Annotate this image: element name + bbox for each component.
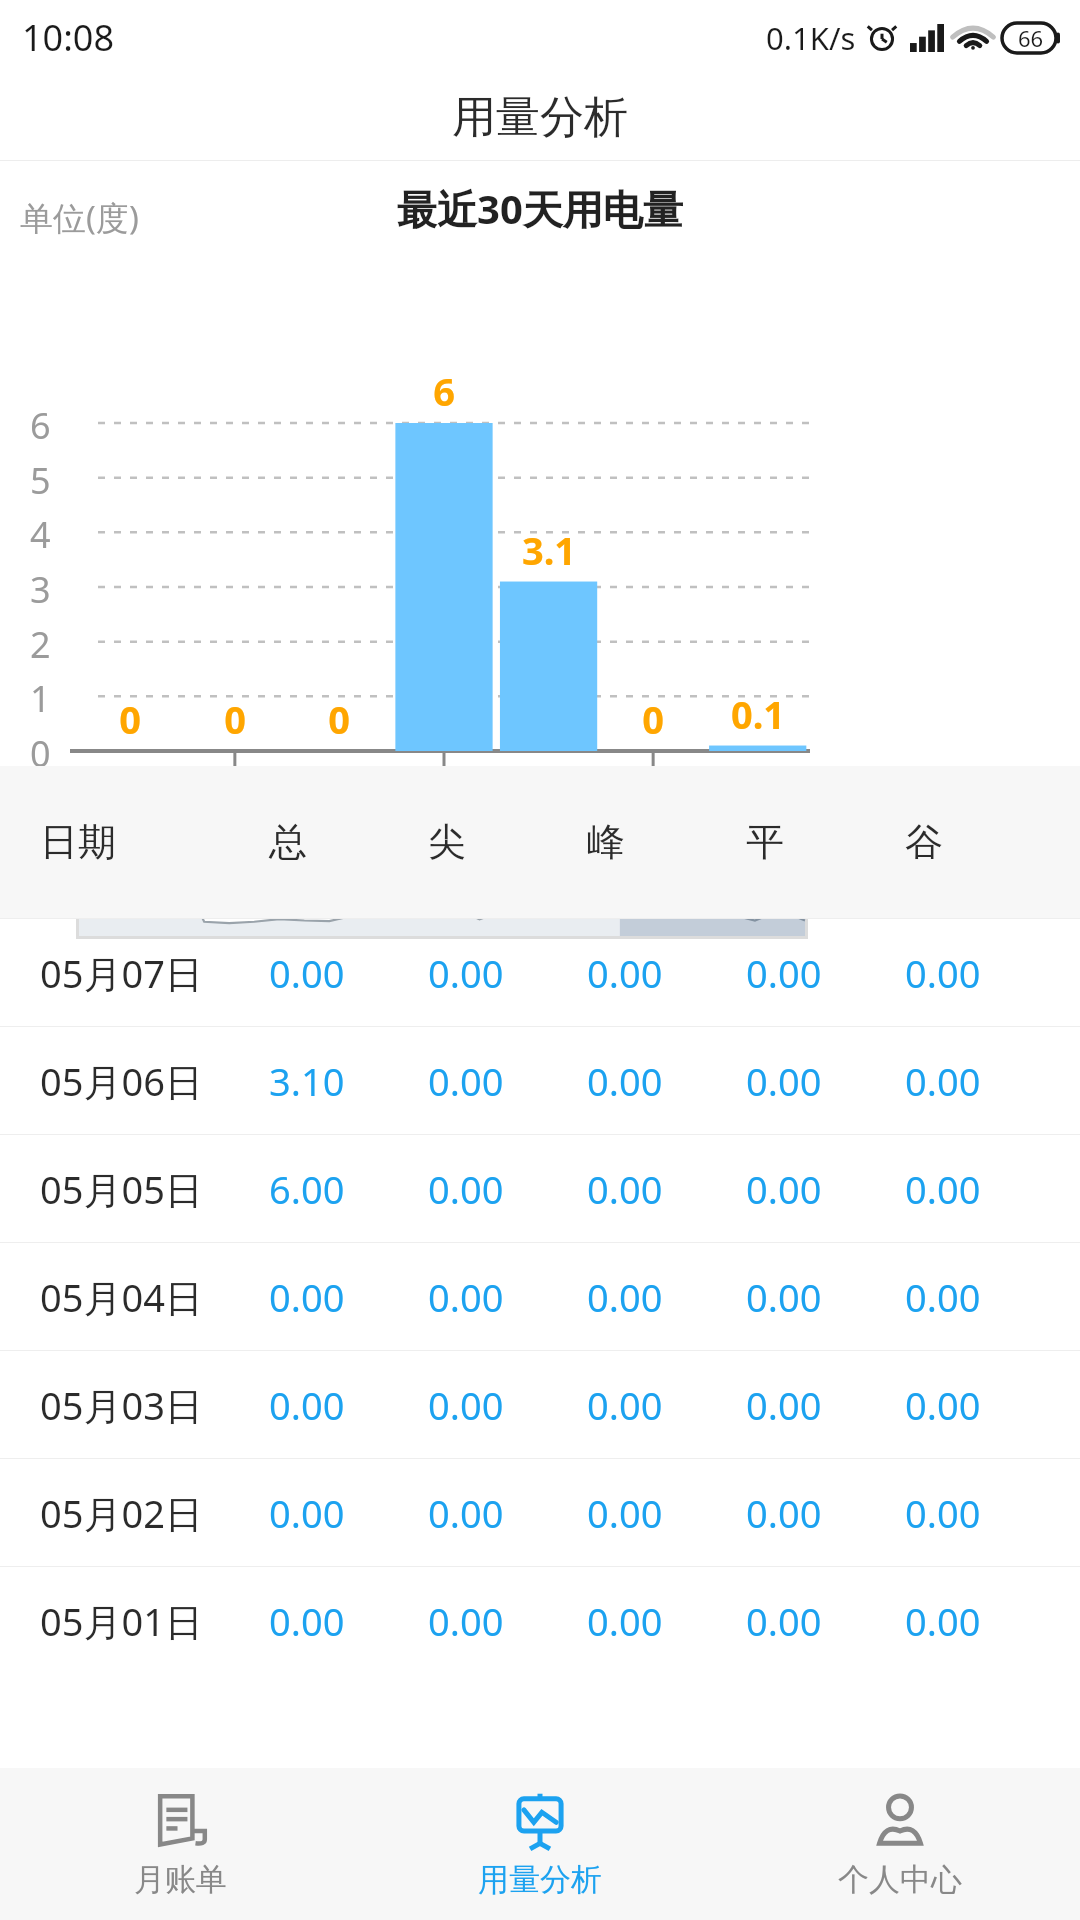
staticText: 0.00: [746, 1379, 822, 1431]
staticText: 0.00: [746, 1487, 822, 1539]
button[interactable]: 05月02日: [0, 1459, 1080, 1566]
staticText: 0.00: [587, 1379, 663, 1431]
staticText: 月账单: [134, 1860, 227, 1899]
staticText: 0.00: [905, 1379, 981, 1431]
staticText: 6: [427, 365, 461, 417]
staticText: 总: [269, 818, 307, 866]
staticText: 0.00: [428, 1379, 504, 1431]
button[interactable]: 05月04日: [0, 1243, 1080, 1350]
staticText: 0.00: [587, 1487, 663, 1539]
staticText: 0.00: [269, 1595, 345, 1647]
staticText: 峰: [587, 818, 625, 866]
staticText: 0.00: [269, 1271, 345, 1323]
staticText: 05月05日: [40, 1163, 203, 1215]
staticText: 5: [30, 456, 51, 505]
staticText: 0: [113, 693, 147, 745]
staticText: 66: [1018, 23, 1044, 53]
staticText: 2: [30, 620, 51, 669]
staticText: 3: [30, 565, 51, 614]
staticText: 05月02日: [40, 1487, 203, 1539]
staticText: 0: [30, 729, 51, 778]
staticText: 3.10: [269, 1055, 345, 1107]
button[interactable]: 用量分析: [360, 1768, 720, 1920]
staticText: 0.00: [587, 1055, 663, 1107]
staticText: 0.00: [905, 1055, 981, 1107]
staticText: 0.00: [746, 947, 822, 999]
staticText: 0.00: [587, 1271, 663, 1323]
staticText: 10:08: [22, 13, 115, 62]
staticText: 0.00: [746, 1163, 822, 1215]
staticText: 0.00: [269, 1487, 345, 1539]
staticText: 0.00: [905, 1271, 981, 1323]
staticText: 用量分析: [478, 1860, 602, 1899]
staticText: 05月06日: [40, 1055, 203, 1107]
button[interactable]: 05月05日: [0, 1135, 1080, 1242]
staticText: 6.00: [269, 1163, 345, 1215]
staticText: 0: [218, 693, 252, 745]
staticText: 0.00: [746, 1595, 822, 1647]
staticText: 1: [30, 674, 51, 723]
staticText: 0.00: [746, 1055, 822, 1107]
staticText: 0.00: [428, 1163, 504, 1215]
staticText: 0.00: [428, 1595, 504, 1647]
button[interactable]: 个人中心: [720, 1768, 1080, 1920]
staticText: 0.00: [428, 1271, 504, 1323]
staticText: 0.00: [905, 1595, 981, 1647]
button[interactable]: 05月03日: [0, 1351, 1080, 1458]
staticText: 0: [636, 693, 670, 745]
staticText: 6: [30, 401, 51, 450]
staticText: 0.00: [587, 1595, 663, 1647]
staticText: 平: [746, 818, 784, 866]
staticText: 用量分析: [452, 90, 628, 145]
button[interactable]: 05月07日: [0, 919, 1080, 1026]
staticText: 0.00: [746, 1271, 822, 1323]
button[interactable]: 05月01日: [0, 1567, 1080, 1674]
staticText: 0.00: [905, 1163, 981, 1215]
staticText: 0.00: [428, 1487, 504, 1539]
staticText: 谷: [905, 818, 943, 866]
staticText: 0.00: [587, 1163, 663, 1215]
staticText: 05月04日: [40, 1271, 203, 1323]
staticText: 0.00: [428, 1055, 504, 1107]
staticText: 0.00: [428, 947, 504, 999]
button[interactable]: 05月06日: [0, 1027, 1080, 1134]
staticText: 0.00: [587, 947, 663, 999]
staticText: 日期: [40, 818, 116, 866]
staticText: 05月03日: [40, 1379, 203, 1431]
staticText: 0.00: [905, 947, 981, 999]
staticText: 0.00: [269, 1379, 345, 1431]
staticText: 0: [322, 693, 356, 745]
staticText: 0.1: [723, 688, 793, 740]
staticText: 05月07日: [40, 947, 203, 999]
staticText: 3.1: [514, 524, 584, 576]
staticText: 最近30天用电量: [397, 181, 683, 236]
staticText: 0.00: [905, 1487, 981, 1539]
staticText: 05月01日: [40, 1595, 203, 1647]
button[interactable]: 月账单: [0, 1768, 360, 1920]
staticText: 0.1K/s: [766, 17, 856, 59]
staticText: 单位(度): [20, 195, 139, 240]
staticText: 尖: [428, 818, 466, 866]
staticText: 4: [30, 510, 51, 559]
staticText: 个人中心: [838, 1860, 962, 1899]
staticText: 0.00: [269, 947, 345, 999]
